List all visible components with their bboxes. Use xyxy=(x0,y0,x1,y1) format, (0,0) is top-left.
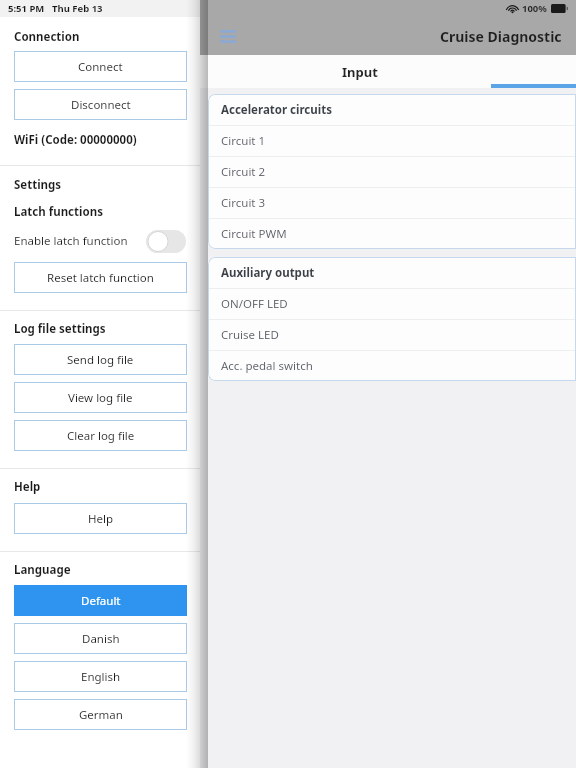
staticText: View log file xyxy=(68,390,133,406)
staticText: Connect xyxy=(78,59,123,75)
staticText: Thu Feb 13 xyxy=(52,2,103,15)
button[interactable]: Enable latch function xyxy=(14,229,186,253)
staticText: Language xyxy=(14,562,71,578)
button[interactable]: Circuit 2 xyxy=(221,157,576,187)
staticText: Cruise LED xyxy=(221,327,279,343)
staticText: Reset latch function xyxy=(47,270,154,286)
staticText: Log file settings xyxy=(14,321,106,337)
staticText: Latch functions xyxy=(14,204,103,220)
staticText: Input xyxy=(342,63,378,81)
button[interactable]: Cruise LED xyxy=(221,320,576,350)
staticText: Help xyxy=(88,511,114,527)
staticText: Auxiliary output xyxy=(221,265,315,281)
staticText: Disconnect xyxy=(71,97,131,113)
button[interactable]: English xyxy=(14,661,187,692)
staticText: Cruise Diagnostic xyxy=(440,27,562,46)
button[interactable]: Disconnect xyxy=(14,89,187,120)
staticText: Accelerator circuits xyxy=(221,102,332,118)
button[interactable]: Reset latch function xyxy=(14,262,187,293)
button[interactable]: Circuit 3 xyxy=(221,188,576,218)
staticText: English xyxy=(81,669,121,685)
button[interactable]: Circuit 1 xyxy=(221,126,576,156)
button[interactable]: German xyxy=(14,699,187,730)
staticText: Acc. pedal switch xyxy=(221,358,313,374)
staticText: WiFi (Code: 00000000) xyxy=(14,132,137,148)
button[interactable]: Enable latch function toggle xyxy=(146,230,186,253)
staticText: Enable latch function xyxy=(14,233,128,249)
staticText: Circuit 3 xyxy=(221,195,266,211)
staticText: 100% xyxy=(522,2,547,15)
staticText: German xyxy=(79,707,123,723)
button[interactable]: View log file xyxy=(14,382,187,413)
button[interactable]: Open menu xyxy=(213,21,243,51)
button[interactable]: Connect xyxy=(14,51,187,82)
staticText: Send log file xyxy=(67,352,134,368)
button[interactable]: Clear log file xyxy=(14,420,187,451)
staticText: ON/OFF LED xyxy=(221,296,288,312)
staticText: Connection xyxy=(14,29,80,45)
button[interactable]: Circuit PWM xyxy=(221,219,576,249)
staticText: Circuit 2 xyxy=(221,164,266,180)
button[interactable]: Send log file xyxy=(14,344,187,375)
staticText: Default xyxy=(81,593,121,609)
button[interactable]: Acc. pedal switch xyxy=(221,351,576,381)
staticText: Clear log file xyxy=(67,428,135,444)
staticText: Circuit 1 xyxy=(221,133,266,149)
button[interactable]: ON/OFF LED xyxy=(221,289,576,319)
staticText: Circuit PWM xyxy=(221,226,287,242)
staticText: Settings xyxy=(14,177,62,193)
button[interactable]: Danish xyxy=(14,623,187,654)
button[interactable]: Default xyxy=(14,585,187,616)
staticText: 5:51 PM xyxy=(8,2,45,15)
staticText: Danish xyxy=(82,631,120,647)
button[interactable]: Help xyxy=(14,503,187,534)
staticText: Help xyxy=(14,479,41,495)
button[interactable]: Input xyxy=(300,55,420,88)
